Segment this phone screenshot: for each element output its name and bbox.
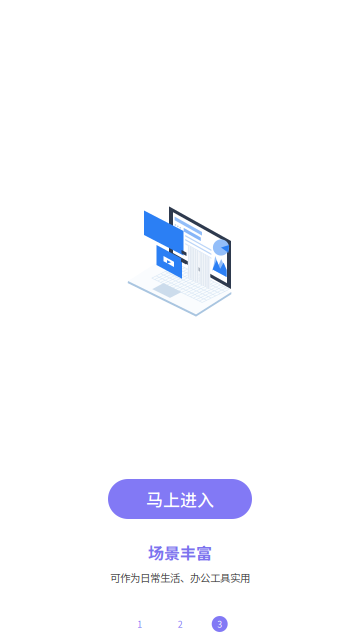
- staticText: 场景丰富: [148, 541, 212, 564]
- staticText: 可作为日常生活、办公工具实用: [110, 570, 250, 585]
- staticText: 马上进入: [146, 487, 214, 511]
- staticText: 2: [178, 618, 183, 630]
- button[interactable]: 3: [212, 616, 228, 632]
- button[interactable]: 马上进入: [108, 479, 252, 519]
- button[interactable]: 1: [132, 616, 148, 632]
- button[interactable]: 2: [172, 616, 188, 632]
- staticText: 3: [217, 618, 222, 630]
- staticText: 1: [137, 618, 142, 630]
